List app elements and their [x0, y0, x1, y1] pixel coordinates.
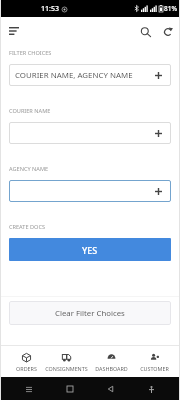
other: Add [155, 188, 162, 195]
staticText: FILTER CHOICES [9, 49, 52, 57]
button[interactable]: Refresh [157, 21, 179, 43]
staticText: COURIER NAME [9, 107, 51, 115]
button[interactable]: Clear Filter Choices [9, 301, 171, 325]
staticText: DASHBOARD [95, 365, 128, 372]
button[interactable]: ORDERS [13, 345, 39, 377]
button[interactable]: CONSIGNMENTS [43, 345, 89, 377]
staticText: 11:53 [41, 4, 59, 14]
button[interactable]: Recents [18, 378, 40, 400]
button[interactable]: Home [59, 378, 81, 400]
staticText: 81% [164, 4, 177, 13]
staticText: ORDERS [16, 365, 37, 372]
button[interactable]: Search [135, 21, 157, 43]
button[interactable]: CUSTOMER [137, 345, 171, 377]
staticText: CUSTOMER [140, 365, 169, 372]
button[interactable]: Back [99, 378, 121, 400]
button[interactable]: Keyboard [140, 378, 162, 400]
staticText: AGENCY NAME [9, 165, 49, 173]
staticText: CREATE DOCS [9, 223, 46, 231]
button[interactable]: DASHBOARD [92, 345, 130, 377]
staticText: YES [82, 244, 98, 256]
button[interactable]: Add [9, 122, 171, 144]
button[interactable]: Add [9, 180, 171, 202]
staticText: CONSIGNMENTS [45, 365, 88, 372]
staticText: Clear Filter Choices [55, 308, 125, 319]
button[interactable]: COURIER NAME, AGENCY NAME [9, 64, 171, 86]
button[interactable]: YES [9, 238, 171, 261]
other: Add [155, 130, 162, 137]
other: Add [155, 72, 162, 79]
staticText: COURIER NAME, AGENCY NAME [15, 70, 133, 81]
button[interactable]: Menu [3, 20, 25, 42]
